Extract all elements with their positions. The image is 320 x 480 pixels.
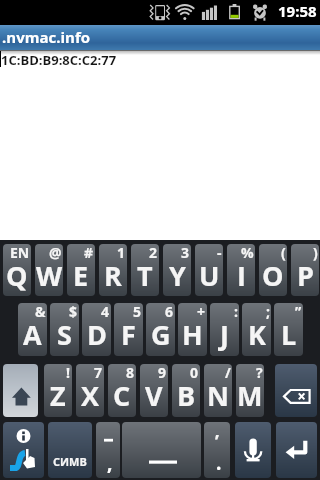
staticText: %: [241, 244, 254, 262]
staticText: Z: [50, 377, 66, 414]
staticText: @: [49, 244, 62, 262]
button[interactable]: Input options: [3, 422, 44, 478]
button[interactable]: Backspace: [275, 364, 317, 417]
button[interactable]: (: [259, 244, 287, 296]
button[interactable]: EN: [3, 244, 31, 296]
button[interactable]: %: [227, 244, 255, 296]
button[interactable]: 5: [114, 303, 143, 356]
staticText: -: [217, 244, 222, 262]
staticText: ?: [256, 364, 263, 382]
staticText: ’: [215, 429, 219, 454]
button[interactable]: @: [35, 244, 63, 296]
staticText: /: [225, 364, 231, 382]
staticText: .: [216, 450, 222, 476]
button[interactable]: ?: [236, 364, 264, 417]
button[interactable]: Enter: [276, 422, 317, 478]
button[interactable]: -: [195, 244, 223, 296]
staticText: N: [207, 377, 229, 414]
staticText: !: [66, 364, 71, 382]
button[interactable]: :: [210, 303, 239, 356]
staticText: P: [297, 257, 314, 294]
button[interactable]: /: [204, 364, 232, 417]
staticText: $: [69, 303, 78, 321]
staticText: 4: [101, 303, 110, 321]
staticText: ,: [107, 450, 113, 476]
button[interactable]: .nvmac.info: [0, 25, 320, 50]
button[interactable]: 3: [163, 244, 191, 296]
staticText: H: [182, 316, 203, 353]
staticText: (: [281, 244, 286, 262]
staticText: :: [234, 303, 238, 321]
staticText: &: [35, 303, 46, 321]
button[interactable]: 4: [82, 303, 111, 356]
staticText: 8: [126, 364, 135, 382]
staticText: ”: [295, 303, 302, 321]
staticText: W: [36, 257, 63, 294]
staticText: E: [73, 257, 89, 294]
staticText: ;: [266, 303, 270, 321]
staticText: #: [84, 244, 94, 262]
button[interactable]: +: [178, 303, 207, 356]
button[interactable]: #: [67, 244, 95, 296]
button[interactable]: 6: [146, 303, 175, 356]
staticText: 9: [158, 364, 167, 382]
staticText: 1: [117, 244, 126, 262]
button[interactable]: 8: [108, 364, 136, 417]
staticText: Q: [6, 257, 28, 294]
button[interactable]: ’: [204, 422, 230, 478]
staticText: A: [23, 316, 42, 353]
staticText: 1C:BD:B9:8C:C2:77: [1, 51, 117, 69]
button[interactable]: !: [44, 364, 72, 417]
staticText: .nvmac.info: [2, 27, 90, 47]
button[interactable]: ): [291, 244, 319, 296]
staticText: +: [197, 303, 206, 321]
staticText: T: [137, 257, 153, 294]
staticText: 19:58: [278, 1, 317, 21]
button[interactable]: $: [50, 303, 79, 356]
staticText: EN: [10, 244, 30, 262]
staticText: 7: [94, 364, 103, 382]
button[interactable]: &: [18, 303, 47, 356]
staticText: Y: [169, 257, 186, 294]
staticText: 5: [133, 303, 142, 321]
button[interactable]: [96, 422, 120, 478]
button[interactable]: Space: [122, 422, 201, 478]
button[interactable]: 7: [76, 364, 104, 417]
button[interactable]: 9: [140, 364, 168, 417]
staticText: 0: [190, 364, 199, 382]
staticText: X: [81, 377, 100, 414]
staticText: J: [220, 316, 229, 353]
button[interactable]: Voice input: [235, 422, 271, 478]
button[interactable]: ;: [242, 303, 271, 356]
staticText: L: [281, 316, 297, 353]
staticText: R: [104, 257, 122, 294]
staticText: S: [57, 316, 72, 353]
button[interactable]: СИМВ: [48, 422, 92, 478]
staticText: D: [87, 316, 107, 353]
staticText: ): [313, 244, 318, 262]
staticText: U: [199, 257, 220, 294]
staticText: M: [237, 377, 263, 414]
staticText: 6: [165, 303, 174, 321]
staticText: O: [262, 257, 284, 294]
staticText: B: [177, 377, 196, 414]
button[interactable]: 1: [99, 244, 127, 296]
staticText: I: [237, 257, 246, 294]
button[interactable]: Shift: [3, 364, 38, 417]
staticText: 2: [149, 244, 158, 262]
button[interactable]: 0: [172, 364, 200, 417]
staticText: V: [145, 377, 163, 414]
staticText: СИМВ: [53, 454, 87, 469]
staticText: 3: [181, 244, 190, 262]
staticText: C: [113, 377, 131, 414]
button[interactable]: ”: [274, 303, 303, 356]
staticText: G: [151, 316, 171, 353]
staticText: K: [248, 316, 266, 353]
staticText: F: [121, 316, 136, 353]
button[interactable]: 2: [131, 244, 159, 296]
